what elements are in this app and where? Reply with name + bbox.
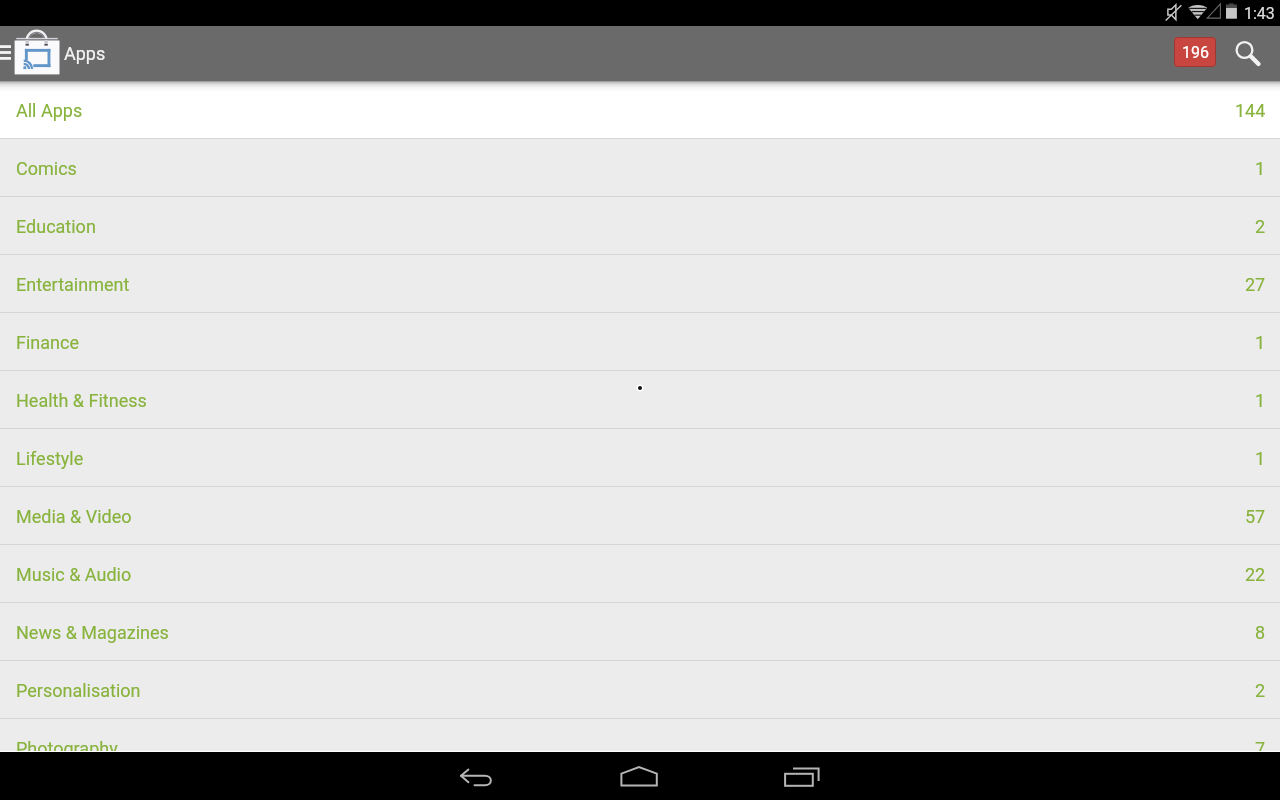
staticText: Media & Video: [16, 506, 132, 527]
staticText: 196: [1182, 43, 1209, 62]
button[interactable]: Home: [599, 752, 679, 800]
staticText: Education: [16, 216, 96, 237]
staticText: Apps: [64, 43, 106, 64]
staticText: 1: [1255, 158, 1266, 179]
button[interactable]: Health & Fitness: [0, 370, 1280, 428]
button[interactable]: Music & Audio: [0, 544, 1280, 602]
button[interactable]: 196: [1174, 37, 1216, 67]
staticText: Finance: [16, 332, 79, 353]
button[interactable]: Back: [436, 752, 516, 800]
button[interactable]: Media & Video: [0, 486, 1280, 544]
staticText: 22: [1245, 564, 1266, 585]
staticText: All Apps: [16, 100, 83, 121]
button[interactable]: Entertainment: [0, 254, 1280, 312]
staticText: 57: [1245, 506, 1266, 527]
staticText: Entertainment: [16, 274, 130, 295]
staticText: 1:43: [1244, 4, 1275, 23]
button[interactable]: News & Magazines: [0, 602, 1280, 660]
button[interactable]: Education: [0, 196, 1280, 254]
button[interactable]: Search: [1220, 26, 1268, 80]
staticText: Comics: [16, 158, 77, 179]
button[interactable]: Lifestyle: [0, 428, 1280, 486]
button[interactable]: All Apps: [0, 80, 1280, 138]
button[interactable]: Recent apps: [762, 752, 842, 800]
staticText: Music & Audio: [16, 564, 132, 585]
staticText: 2: [1255, 216, 1266, 237]
button[interactable]: Personalisation: [0, 660, 1280, 718]
staticText: 144: [1235, 100, 1266, 121]
button[interactable]: Finance: [0, 312, 1280, 370]
button[interactable]: Comics: [0, 138, 1280, 196]
staticText: 2: [1255, 680, 1266, 701]
staticText: 1: [1255, 448, 1266, 469]
button[interactable]: Open navigation drawer: [0, 26, 62, 80]
staticText: Lifestyle: [16, 448, 84, 469]
staticText: Health & Fitness: [16, 390, 147, 411]
staticText: Photography: [16, 738, 118, 752]
staticText: 27: [1245, 274, 1266, 295]
staticText: 1: [1255, 332, 1266, 353]
staticText: News & Magazines: [16, 622, 169, 643]
staticText: 8: [1255, 622, 1266, 643]
staticText: 1: [1255, 390, 1266, 411]
button[interactable]: Photography: [0, 718, 1280, 752]
staticText: 7: [1255, 738, 1266, 752]
staticText: Personalisation: [16, 680, 141, 701]
